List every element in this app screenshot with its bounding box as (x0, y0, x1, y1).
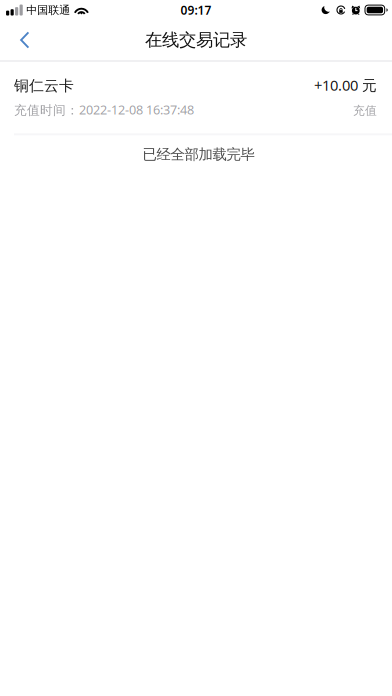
staticText: 在线交易记录 (145, 29, 247, 51)
staticText: 已经全部加载完毕 (142, 145, 254, 163)
staticText: 充值时间：2022-12-08 16:37:48 (14, 101, 194, 118)
button[interactable]: 铜仁云卡 (0, 62, 392, 135)
staticText: 09:17 (180, 2, 211, 18)
staticText: 充值 (353, 103, 377, 118)
staticText: 铜仁云卡 (14, 76, 74, 95)
staticText: 中国联通 (26, 3, 70, 17)
button[interactable]: 返回 (0, 21, 47, 59)
staticText: +10.00 元 (314, 75, 377, 95)
